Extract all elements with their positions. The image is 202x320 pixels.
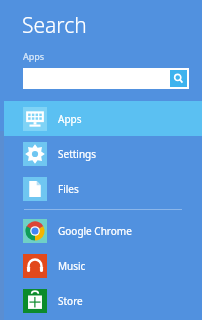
staticText: Store (58, 294, 83, 308)
button[interactable]: Store (4, 283, 202, 318)
staticText: Files (58, 182, 79, 196)
staticText: Apps (23, 50, 45, 62)
button[interactable]: Settings (4, 136, 202, 171)
button[interactable]: Search (170, 70, 187, 87)
staticText: Apps (58, 112, 82, 126)
staticText: Music (58, 259, 86, 273)
staticText: Settings (58, 147, 97, 161)
button[interactable]: Apps (4, 101, 202, 136)
staticText: Google Chrome (58, 224, 132, 238)
button[interactable]: Google Chrome (4, 213, 202, 248)
button[interactable]: Music (4, 248, 202, 283)
staticText: Search (22, 11, 87, 40)
button[interactable]: Files (4, 171, 202, 206)
button[interactable]: Search (23, 68, 189, 89)
